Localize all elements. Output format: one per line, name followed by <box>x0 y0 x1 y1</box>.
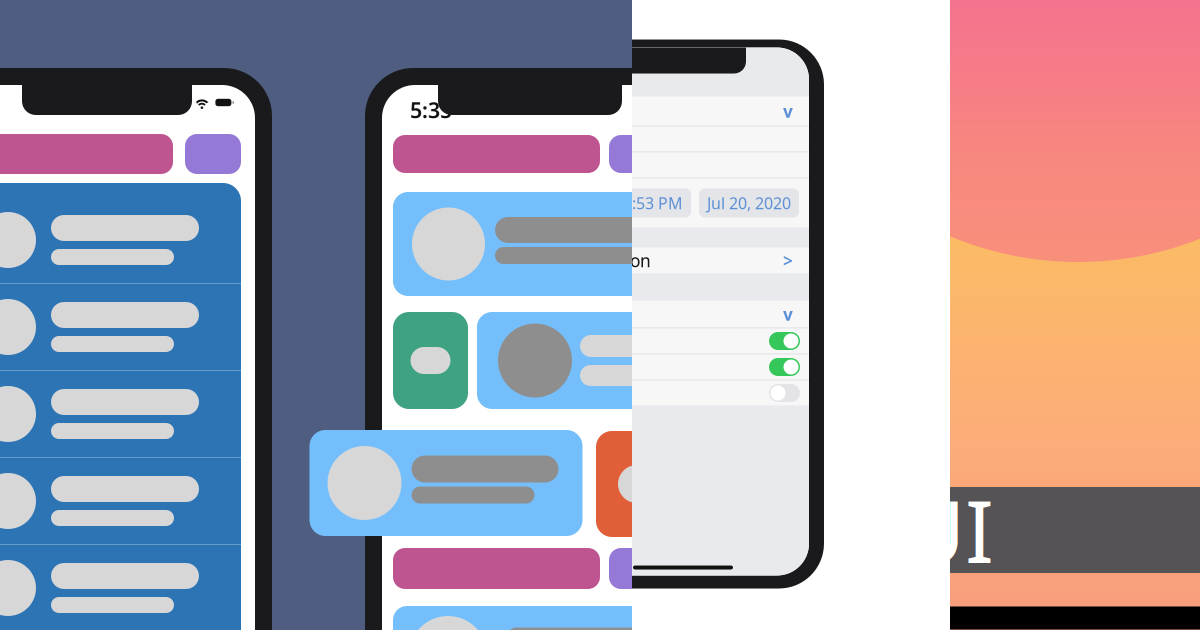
button[interactable] <box>393 312 468 409</box>
button[interactable] <box>477 312 667 409</box>
button[interactable]: v <box>557 96 809 125</box>
button[interactable] <box>185 134 241 174</box>
button[interactable] <box>557 354 809 379</box>
button[interactable] <box>557 380 809 405</box>
button[interactable] <box>609 548 667 589</box>
button[interactable] <box>0 545 241 630</box>
button[interactable] <box>0 371 241 458</box>
staticText: v <box>783 302 793 325</box>
staticText: 12:53 PM <box>614 192 683 214</box>
button[interactable] <box>393 135 600 173</box>
button[interactable]: Jul 20, 2020 <box>699 188 799 218</box>
button[interactable] <box>557 152 809 177</box>
button[interactable] <box>309 430 582 536</box>
button[interactable] <box>0 134 173 174</box>
button[interactable] <box>393 548 600 589</box>
staticText: …rmation <box>573 249 651 272</box>
button[interactable] <box>609 135 667 173</box>
button[interactable]: …rmation <box>557 247 809 273</box>
button[interactable] <box>0 458 241 545</box>
staticText: v <box>783 99 793 122</box>
button[interactable] <box>393 606 667 630</box>
button[interactable] <box>596 431 686 537</box>
button[interactable]: v <box>557 300 809 327</box>
button[interactable] <box>393 192 667 296</box>
button[interactable] <box>0 284 241 371</box>
button[interactable] <box>557 328 809 353</box>
button[interactable]: 12:53 PM <box>606 188 691 218</box>
staticText: Jul 20, 2020 <box>707 192 791 214</box>
staticText: SwiftUI <box>707 472 994 588</box>
button[interactable] <box>0 197 241 284</box>
button[interactable] <box>557 126 809 151</box>
staticText: 5:35 <box>410 96 452 124</box>
staticText: > <box>783 249 793 272</box>
